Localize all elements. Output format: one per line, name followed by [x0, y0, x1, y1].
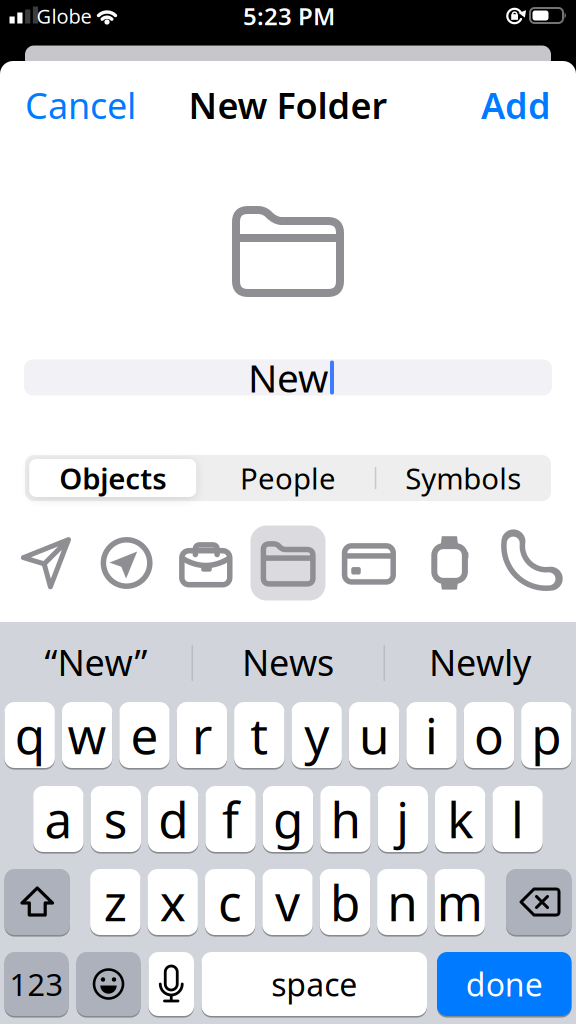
staticText: s: [104, 786, 128, 852]
button[interactable]: Paper plane: [6, 520, 86, 606]
staticText: b: [330, 869, 360, 935]
staticText: People: [240, 458, 336, 497]
button[interactable]: Add: [391, 80, 551, 130]
staticText: h: [330, 786, 360, 852]
staticText: c: [218, 869, 242, 935]
button[interactable]: d: [148, 785, 198, 853]
staticText: j: [396, 786, 409, 852]
staticText: Globe: [36, 3, 91, 29]
staticText: done: [466, 963, 543, 1005]
button[interactable]: Folder: [248, 520, 328, 606]
button[interactable]: w: [62, 701, 112, 769]
button[interactable]: space: [201, 951, 427, 1017]
staticText: q: [15, 702, 45, 768]
staticText: g: [273, 786, 303, 852]
button[interactable]: Emoji: [76, 951, 140, 1017]
button[interactable]: c: [205, 868, 255, 936]
staticText: x: [160, 869, 186, 935]
button[interactable]: n: [377, 868, 427, 936]
staticText: o: [474, 702, 504, 768]
staticText: d: [158, 786, 188, 852]
staticText: Objects: [59, 458, 166, 497]
button[interactable]: o: [464, 701, 514, 769]
button[interactable]: v: [262, 868, 313, 936]
button[interactable]: e: [119, 701, 170, 769]
button[interactable]: News: [194, 632, 382, 692]
button[interactable]: s: [91, 785, 141, 853]
staticText: e: [130, 702, 158, 768]
button[interactable]: Delete: [506, 868, 571, 936]
staticText: v: [275, 869, 300, 935]
staticText: Cancel: [25, 81, 136, 129]
button[interactable]: q: [4, 701, 55, 769]
button[interactable]: Objects: [25, 455, 200, 501]
button[interactable]: x: [147, 868, 198, 936]
staticText: New: [248, 352, 328, 403]
button[interactable]: i: [406, 701, 457, 769]
staticText: i: [425, 702, 438, 768]
staticText: m: [437, 869, 483, 935]
staticText: News: [242, 638, 334, 686]
button[interactable]: Navigation: [87, 520, 167, 606]
button[interactable]: k: [435, 785, 485, 853]
button[interactable]: m: [434, 868, 485, 936]
staticText: Symbols: [405, 458, 521, 497]
staticText: z: [104, 869, 127, 935]
button[interactable]: y: [291, 701, 342, 769]
staticText: t: [250, 702, 268, 768]
staticText: New Folder: [188, 81, 387, 129]
button[interactable]: Briefcase: [167, 520, 247, 606]
button[interactable]: Watch: [409, 520, 489, 606]
button[interactable]: New: [24, 357, 552, 397]
button[interactable]: Shift: [4, 868, 70, 936]
staticText: space: [271, 963, 357, 1005]
button[interactable]: Credit card: [329, 520, 409, 606]
button[interactable]: g: [263, 785, 313, 853]
staticText: n: [387, 869, 417, 935]
button[interactable]: a: [33, 785, 84, 853]
button[interactable]: Symbols: [376, 455, 551, 501]
button[interactable]: Cancel: [25, 80, 185, 130]
button[interactable]: f: [205, 785, 256, 853]
button[interactable]: “New”: [2, 632, 190, 692]
staticText: 123: [9, 964, 63, 1004]
staticText: Newly: [429, 638, 531, 686]
staticText: r: [192, 702, 212, 768]
staticText: u: [359, 702, 389, 768]
staticText: f: [222, 786, 239, 852]
staticText: a: [44, 786, 72, 852]
staticText: p: [531, 702, 561, 768]
button[interactable]: r: [177, 701, 227, 769]
staticText: l: [511, 786, 524, 852]
button[interactable]: 123: [4, 951, 68, 1017]
button[interactable]: p: [521, 701, 571, 769]
staticText: “New”: [44, 638, 147, 686]
button[interactable]: b: [320, 868, 370, 936]
button[interactable]: Dictate: [148, 951, 194, 1017]
button[interactable]: h: [320, 785, 371, 853]
button[interactable]: People: [200, 455, 375, 501]
button[interactable]: j: [378, 785, 428, 853]
staticText: 5:23 PM: [243, 0, 335, 32]
button[interactable]: t: [234, 701, 284, 769]
button[interactable]: Newly: [386, 632, 574, 692]
staticText: w: [68, 702, 107, 768]
button[interactable]: z: [90, 868, 140, 936]
button[interactable]: Phone: [490, 520, 570, 606]
button[interactable]: l: [492, 785, 543, 853]
staticText: k: [447, 786, 473, 852]
staticText: Add: [481, 81, 551, 129]
button[interactable]: u: [349, 701, 399, 769]
staticText: y: [304, 702, 329, 768]
button[interactable]: done: [437, 951, 571, 1017]
